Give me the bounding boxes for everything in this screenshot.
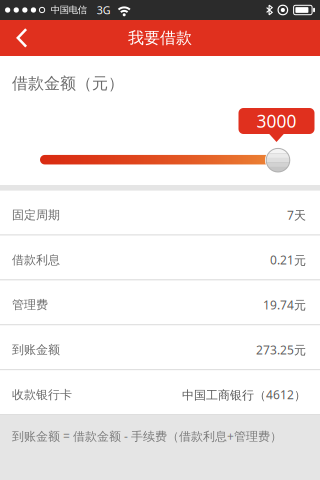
button[interactable]: 收款银行卡 [0,370,320,414]
staticText: 借款金额（元） [12,74,124,93]
button[interactable]: 借款利息 [0,235,320,279]
staticText: 273.25元 [256,342,306,358]
staticText: 19.74元 [263,297,306,313]
staticText: 固定周期 [12,208,60,222]
staticText: 我要借款 [128,28,192,48]
button[interactable]: 管理费 [0,280,320,324]
staticText: 中国电信 [51,4,87,16]
staticText: 到账金额 [12,342,60,357]
staticText: 3G [97,3,111,17]
staticText: 3000 [256,109,296,132]
staticText: 收款银行卡 [12,387,72,402]
button[interactable]: 固定周期 [0,191,320,234]
staticText: 中国工商银行（4612） [182,387,306,403]
button[interactable]: Back [0,20,44,56]
staticText: 7天 [287,207,306,223]
staticText: 借款利息 [12,253,60,267]
staticText: 0.21元 [270,252,306,268]
staticText: 管理费 [12,297,48,312]
staticText: 到账金额 = 借款金额 - 手续费（借款利息+管理费） [12,428,282,444]
button[interactable]: 到账金额 [0,325,320,369]
